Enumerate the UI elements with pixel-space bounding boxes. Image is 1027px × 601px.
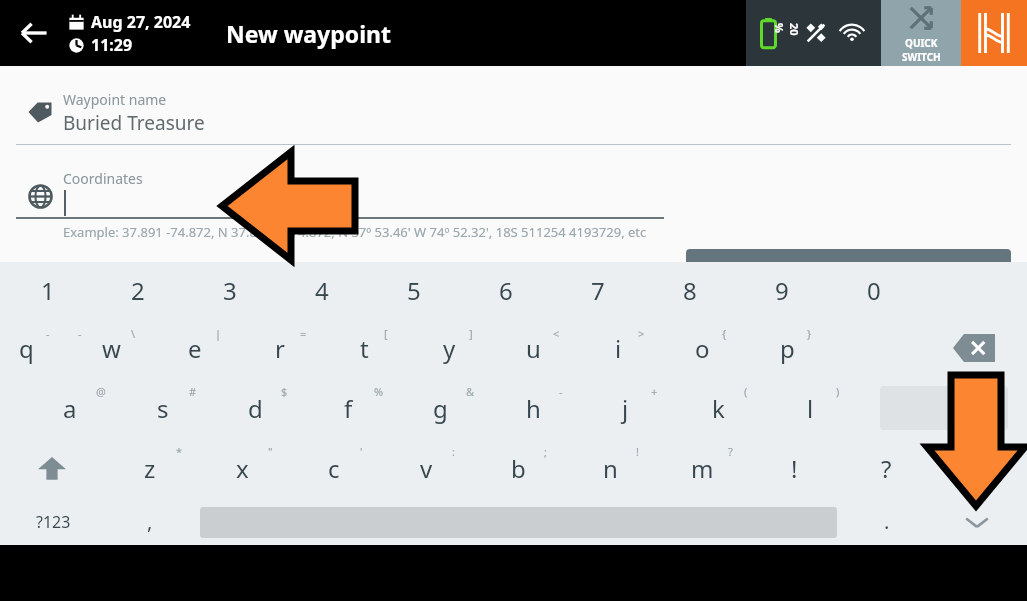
button[interactable]: s [127,378,199,438]
staticText: ( [744,384,748,399]
staticText: i [615,332,622,365]
staticText: ? [728,444,733,459]
staticText: s [157,392,169,425]
staticText: [ [384,326,388,341]
button[interactable]: . [856,498,918,545]
button[interactable]: 3 [184,262,276,318]
button[interactable]: d [219,378,291,438]
button[interactable]: o [666,318,738,378]
staticText: $ [281,384,288,399]
staticText: q [19,332,34,365]
button[interactable]: Enter [880,386,1008,430]
button[interactable]: 1 [2,262,94,318]
button[interactable]: w [75,318,147,378]
button[interactable]: CHOOSE ON MAP [686,249,1011,297]
button[interactable]: QUICK [881,0,961,66]
button[interactable]: p [751,318,823,378]
button[interactable]: g [404,378,476,438]
staticText: ! [791,452,798,485]
staticText: 4 [315,274,329,307]
staticText: 0 [867,274,881,307]
button[interactable]: b [482,438,554,498]
staticText: ? [881,452,892,485]
staticText: Aug 27, 2024 [91,11,191,33]
button[interactable]: a [34,378,106,438]
staticText: , [147,508,153,535]
staticText: " [268,444,273,459]
staticText: ! [636,444,639,459]
staticText: y [443,332,456,365]
staticText: SWITCH [902,50,941,64]
staticText: b [511,452,526,485]
button[interactable]: t [328,318,400,378]
button[interactable]: 5 [368,262,460,318]
button[interactable]: e [159,318,231,378]
button[interactable]: 7 [552,262,644,318]
button[interactable]: h [497,378,569,438]
staticText: 5 [407,274,421,307]
staticText: n [603,452,618,485]
button[interactable]: App logo [961,0,1027,66]
staticText: t [360,332,369,365]
button[interactable]: k [682,378,754,438]
staticText: @ [96,384,106,399]
button[interactable]: v [390,438,462,498]
button[interactable]: z [114,438,186,498]
staticText: o [695,332,710,365]
staticText: z [144,452,156,485]
button[interactable]: Backspace [943,328,1005,368]
button[interactable]: Back [8,7,60,59]
staticText: < [553,326,560,341]
button[interactable]: 9 [736,262,828,318]
button[interactable]: q [0,318,62,378]
staticText: k [712,392,725,425]
staticText: g [433,392,448,425]
button[interactable]: u [497,318,569,378]
staticText: d [248,392,263,425]
button[interactable]: n [574,438,646,498]
button[interactable]: ? [850,438,922,498]
staticText: p [780,332,795,365]
button[interactable]: ?123 [18,498,88,545]
staticText: } [807,326,812,341]
staticText: - [559,384,563,399]
button[interactable]: , [118,498,182,545]
staticText: 7 [591,274,605,307]
button[interactable]: 8 [644,262,736,318]
button[interactable]: l [774,378,846,438]
staticText: c [328,452,340,485]
button[interactable]: m [666,438,738,498]
button[interactable]: j [589,378,661,438]
staticText: # [189,384,197,399]
staticText: x [236,452,249,485]
staticText: Coordinates [63,169,143,188]
staticText: 3 [223,274,237,307]
staticText: m [691,452,714,485]
button[interactable]: c [298,438,370,498]
button[interactable]: r [244,318,316,378]
staticText: Waypoint name [63,90,167,109]
button[interactable]: Hide keyboard [946,498,1008,545]
staticText: v [420,452,433,485]
staticText: - [78,326,82,341]
button[interactable]: 2 [92,262,184,318]
button[interactable]: 0 [828,262,920,318]
button[interactable]: i [582,318,654,378]
button[interactable]: x [206,438,278,498]
staticText: CHOOSE ON MAP [770,260,927,286]
staticText: r [275,332,285,365]
button[interactable]: 6 [460,262,552,318]
staticText: j [622,392,629,425]
button[interactable]: Waypoint name [0,66,1027,144]
staticText: New waypoint [226,18,391,49]
staticText: w [102,332,121,365]
staticText: % [374,384,384,399]
staticText: e [188,332,202,365]
button[interactable]: Shift [22,446,82,490]
button[interactable]: f [312,378,384,438]
button[interactable]: 4 [276,262,368,318]
button[interactable]: y [413,318,485,378]
button[interactable]: Coordinates [0,145,1027,217]
button[interactable]: ! [758,438,830,498]
